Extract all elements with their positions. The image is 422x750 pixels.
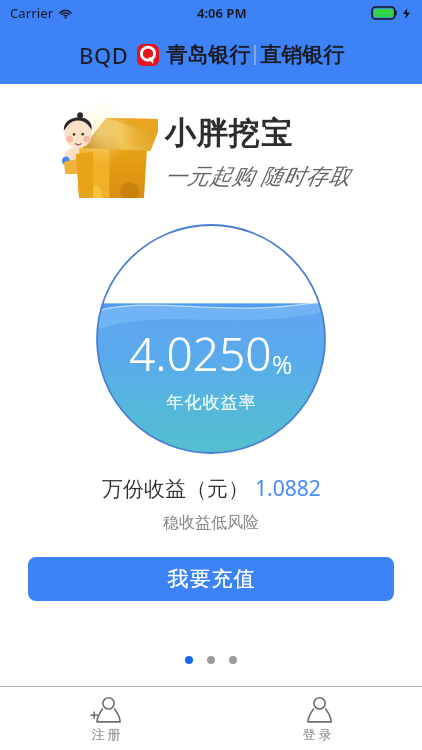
staticText: 一元起购 随时存取: [164, 160, 351, 190]
staticText: BQD: [79, 40, 129, 70]
staticText: 登录: [301, 726, 333, 742]
staticText: 注册: [90, 726, 122, 742]
button[interactable]: 注册: [0, 687, 211, 750]
button[interactable]: [207, 656, 215, 664]
button[interactable]: 我要充值: [28, 557, 394, 601]
button[interactable]: 登录: [211, 687, 422, 750]
staticText: 4.0250: [129, 322, 272, 385]
button[interactable]: [185, 656, 193, 664]
staticText: 直销银行: [260, 42, 344, 68]
button[interactable]: [229, 656, 237, 664]
staticText: 1.0882: [255, 474, 321, 503]
staticText: 4:06 PM: [197, 4, 247, 22]
staticText: 年化收益率: [166, 392, 256, 413]
staticText: 青岛银行: [166, 42, 250, 68]
staticText: 我要充值: [167, 566, 255, 592]
staticText: 万份收益（元）: [102, 476, 249, 502]
staticText: 小胖挖宝: [164, 114, 292, 153]
staticText: Carrier: [10, 4, 54, 22]
staticText: %: [272, 347, 293, 381]
staticText: 稳收益低风险: [0, 513, 422, 533]
